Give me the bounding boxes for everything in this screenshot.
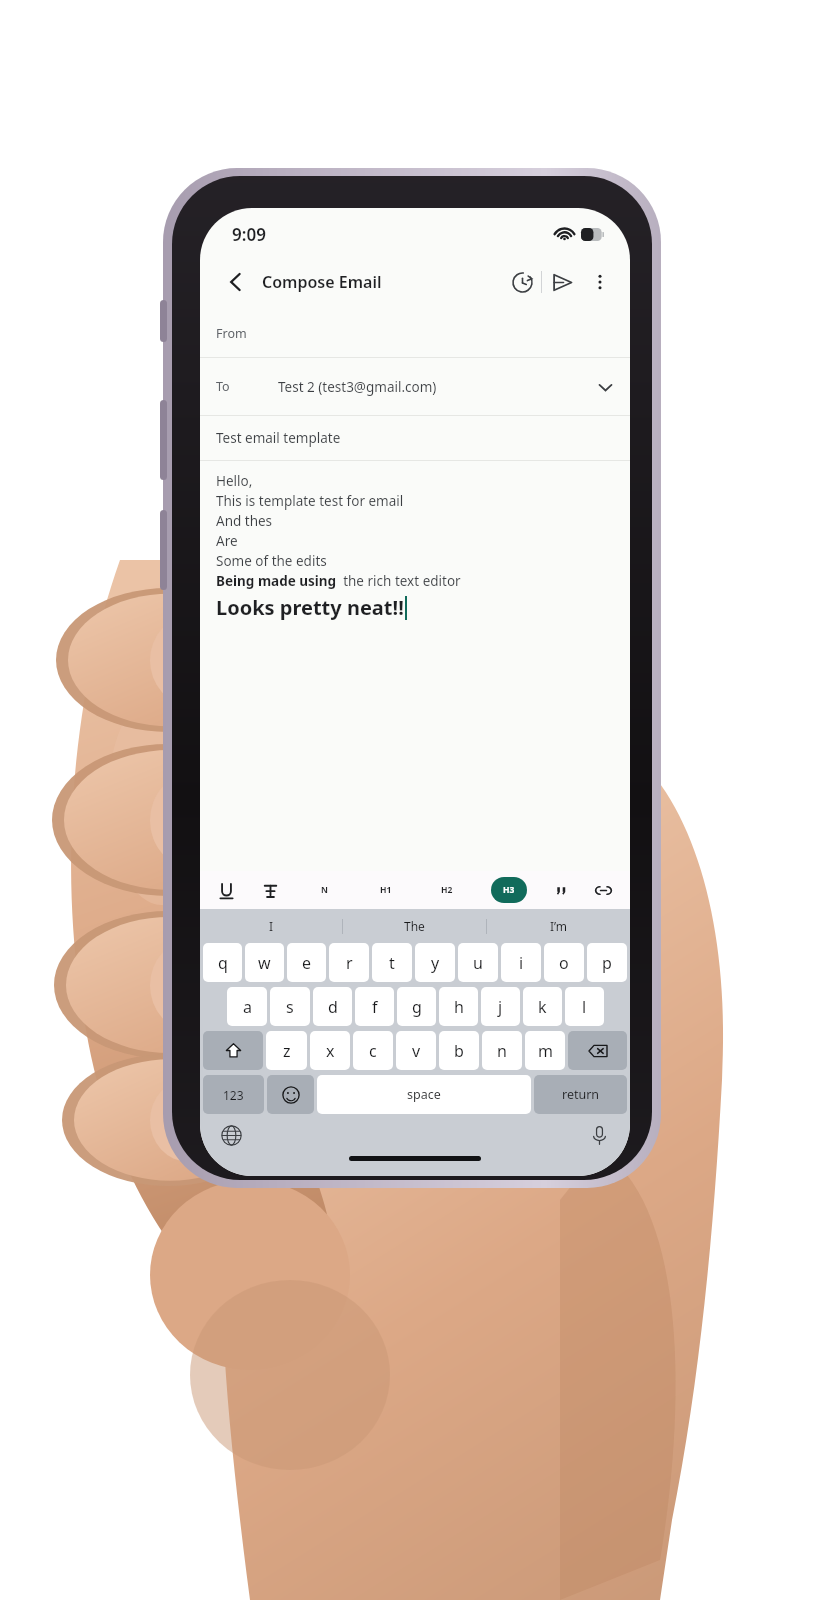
button[interactable]: H3 (478, 871, 540, 909)
staticText: t (389, 952, 395, 974)
staticText: Hello, (216, 472, 253, 490)
staticText: x (326, 1040, 335, 1062)
staticText: i (519, 952, 524, 974)
staticText: Test 2 (test3@gmail.com) (278, 378, 437, 396)
staticText: q (218, 952, 228, 974)
button[interactable]: h (439, 987, 478, 1026)
button[interactable]: b (439, 1031, 479, 1070)
staticText: f (372, 996, 378, 1018)
staticText: s (286, 996, 294, 1018)
button[interactable]: s (270, 987, 310, 1026)
button[interactable]: Quote (540, 871, 582, 909)
button[interactable]: q (203, 943, 242, 982)
staticText: v (412, 1040, 421, 1062)
staticText: 9:09 (232, 223, 266, 246)
button[interactable]: H2 (416, 871, 478, 909)
button[interactable]: Strikethrough (246, 871, 294, 909)
button[interactable]: The (343, 909, 486, 943)
staticText: k (538, 996, 547, 1018)
button[interactable]: Backspace (568, 1031, 627, 1070)
button[interactable]: r (329, 943, 369, 982)
staticText: c (369, 1040, 377, 1062)
staticText: From (216, 325, 278, 342)
button[interactable]: More options (582, 262, 618, 302)
button[interactable]: Insert link (582, 871, 624, 909)
staticText: N (321, 884, 328, 896)
button[interactable]: w (245, 943, 284, 982)
button[interactable]: Shift (203, 1031, 263, 1070)
button[interactable]: k (523, 987, 562, 1026)
staticText: Some of the edits (216, 552, 327, 570)
button[interactable]: x (310, 1031, 350, 1070)
button[interactable]: Emoji (267, 1075, 314, 1114)
staticText: This is template test for email (216, 492, 404, 510)
staticText: o (559, 952, 569, 974)
button[interactable]: H1 (355, 871, 416, 909)
button[interactable]: l (565, 987, 604, 1026)
staticText: y (431, 952, 440, 974)
staticText: Looks pretty neat!! (216, 594, 404, 621)
button[interactable]: g (397, 987, 436, 1026)
button[interactable]: I’m (487, 909, 630, 943)
staticText: w (258, 952, 271, 974)
staticText: H2 (441, 884, 453, 896)
button[interactable]: o (544, 943, 584, 982)
button[interactable]: N (294, 871, 355, 909)
button[interactable]: 123 (203, 1075, 264, 1114)
staticText: Being made using the rich text editor (216, 572, 461, 590)
button[interactable]: Schedule send (503, 263, 541, 301)
staticText: g (412, 996, 422, 1018)
button[interactable]: z (266, 1031, 307, 1070)
staticText: u (473, 952, 483, 974)
staticText: j (498, 996, 503, 1018)
button[interactable]: e (287, 943, 326, 982)
staticText: I (269, 918, 274, 934)
staticText: Test email template (216, 429, 341, 447)
button[interactable]: Send (542, 262, 582, 302)
button[interactable]: m (525, 1031, 565, 1070)
button[interactable]: n (482, 1031, 522, 1070)
button[interactable]: To (200, 358, 630, 415)
staticText: z (283, 1040, 291, 1062)
button[interactable]: Dictate (582, 1118, 616, 1152)
button[interactable]: j (481, 987, 520, 1026)
staticText: The (404, 918, 425, 934)
button[interactable]: Hello, (216, 471, 630, 871)
button[interactable]: Change language (214, 1118, 248, 1152)
staticText: H1 (380, 884, 392, 896)
button[interactable]: Test email template (200, 416, 630, 460)
button[interactable]: return (534, 1075, 627, 1114)
staticText: l (582, 996, 587, 1018)
staticText: m (538, 1040, 553, 1062)
button[interactable]: space (317, 1075, 531, 1114)
staticText: h (454, 996, 464, 1018)
staticText: e (302, 952, 312, 974)
button[interactable]: f (355, 987, 394, 1026)
staticText: n (497, 1040, 507, 1062)
button[interactable]: c (353, 1031, 393, 1070)
staticText: Compose Email (262, 271, 382, 293)
button[interactable]: i (501, 943, 541, 982)
button[interactable]: Back (216, 262, 256, 302)
button[interactable]: t (372, 943, 412, 982)
button[interactable]: d (313, 987, 352, 1026)
button[interactable]: I (200, 909, 342, 943)
button[interactable]: p (587, 943, 627, 982)
staticText: Are (216, 532, 238, 550)
button[interactable]: v (396, 1031, 436, 1070)
staticText: return (562, 1086, 600, 1103)
staticText: p (602, 952, 612, 974)
staticText: And thes (216, 512, 273, 530)
staticText: b (454, 1040, 464, 1062)
button[interactable]: u (458, 943, 498, 982)
staticText: 123 (223, 1087, 244, 1103)
staticText: r (346, 952, 353, 974)
staticText: I’m (550, 918, 568, 934)
button[interactable]: y (415, 943, 455, 982)
button[interactable]: a (227, 987, 267, 1026)
button[interactable]: Underline (206, 871, 246, 909)
staticText: d (328, 996, 338, 1018)
staticText: H3 (503, 884, 515, 896)
button[interactable]: From (200, 310, 630, 357)
staticText: To (216, 378, 278, 395)
